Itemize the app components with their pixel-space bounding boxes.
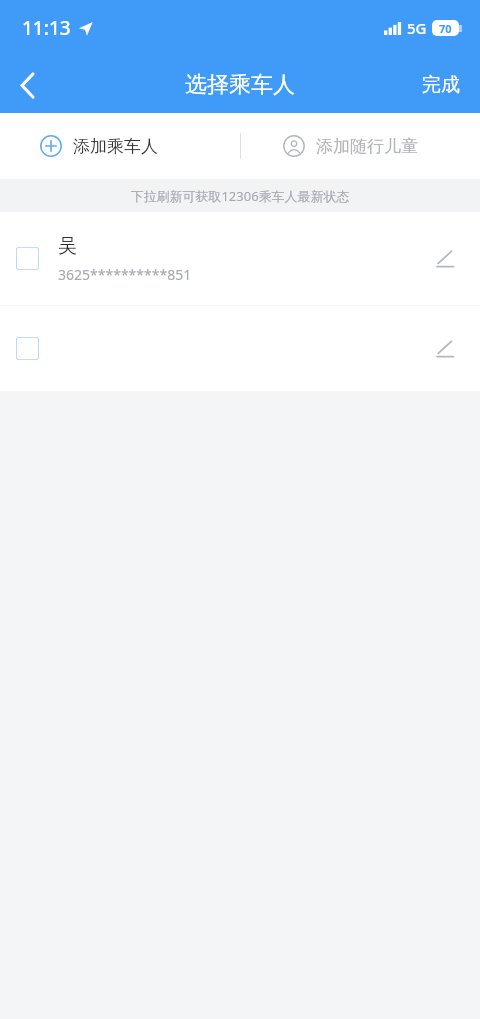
- staticText: 5G: [407, 18, 427, 38]
- button[interactable]: Select passenger: [0, 212, 480, 305]
- staticText: 11:13: [22, 15, 71, 41]
- button[interactable]: Edit passenger: [430, 334, 460, 364]
- staticText: 70: [439, 21, 452, 36]
- button[interactable]: Select passenger: [0, 306, 480, 391]
- staticText: 完成: [422, 73, 460, 97]
- button[interactable]: Edit passenger: [430, 244, 460, 274]
- staticText: 选择乘车人: [185, 71, 295, 99]
- button[interactable]: Select passenger: [16, 247, 39, 270]
- staticText: 吴: [58, 234, 77, 258]
- staticText: 下拉刷新可获取12306乘车人最新状态: [130, 187, 350, 205]
- staticText: 添加乘车人: [73, 136, 158, 157]
- button[interactable]: 添加乘车人: [40, 135, 158, 157]
- staticText: 3625**********851: [58, 265, 192, 284]
- button[interactable]: Back: [0, 58, 54, 112]
- button[interactable]: Select passenger: [16, 337, 39, 360]
- button[interactable]: 添加随行儿童: [283, 135, 418, 157]
- button[interactable]: 完成: [402, 56, 480, 113]
- staticText: 添加随行儿童: [316, 136, 418, 157]
